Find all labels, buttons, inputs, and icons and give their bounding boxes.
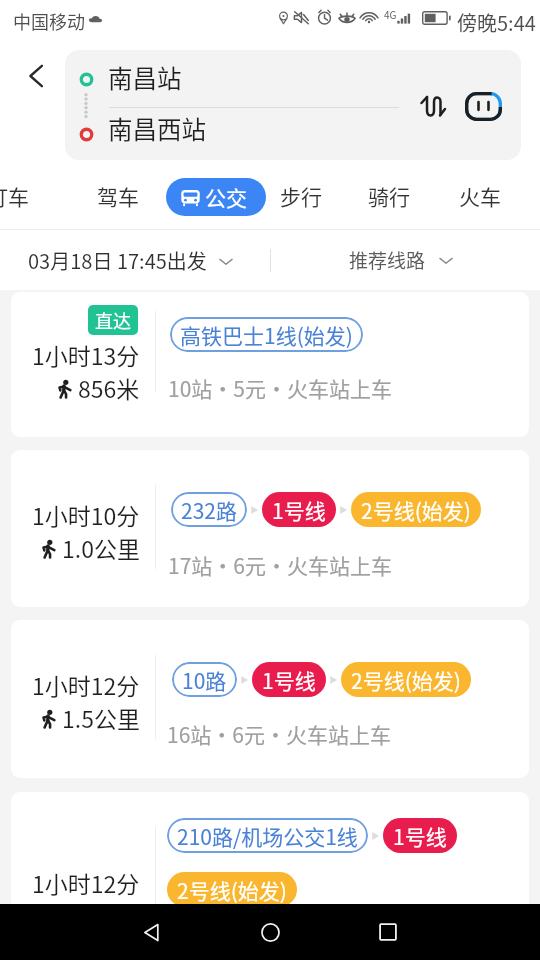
staticText: 1.5公里 [62, 701, 140, 734]
button[interactable]: Recent apps [373, 917, 403, 947]
staticText: 骑行 [368, 181, 410, 211]
button[interactable]: 步行 [280, 181, 322, 211]
staticText: 1小时12分 [32, 668, 140, 701]
button[interactable]: 1小时12分 [11, 792, 529, 950]
staticText: 1号线 [262, 665, 316, 695]
button[interactable]: 骑行 [368, 181, 410, 211]
staticText: 856米 [78, 371, 140, 404]
staticText: 傍晚5:44 [457, 8, 536, 37]
staticText: 1小时13分 [32, 338, 140, 371]
staticText: 高铁巴士1线(始发) [180, 320, 353, 350]
staticText: 2号线(始发) [177, 875, 287, 905]
staticText: 直达 [95, 307, 131, 333]
button[interactable]: 火车 [459, 181, 501, 211]
staticText: 中国移动 [13, 8, 85, 34]
staticText: 打车 [0, 181, 29, 211]
staticText: 232路 [181, 495, 237, 525]
button[interactable]: 直达 [11, 292, 529, 437]
staticText: 驾车 [97, 181, 139, 211]
staticText: 2号线(始发) [361, 495, 471, 525]
staticText: 南昌西站 [108, 111, 206, 146]
staticText: 推荐线路 [349, 246, 426, 274]
staticText: 10路 [182, 665, 227, 695]
staticText: 17站·6元·火车站上车 [168, 550, 392, 580]
button[interactable]: Back [16, 56, 56, 96]
button[interactable]: 1小时10分 [11, 450, 529, 607]
button[interactable]: 驾车 [97, 181, 139, 211]
staticText: 03月18日 17:45出发 [28, 246, 207, 275]
staticText: 公交 [205, 182, 247, 212]
staticText: 10站·5元·火车站上车 [168, 373, 392, 403]
staticText: 步行 [280, 181, 322, 211]
staticText: 16站·6元·火车站上车 [167, 719, 391, 749]
button[interactable]: 公交 [166, 178, 266, 216]
staticText: 南昌站 [108, 60, 182, 95]
staticText: 210路/机场公交1线 [177, 821, 358, 851]
button[interactable]: 1小时12分 [11, 620, 529, 778]
button[interactable]: Home [255, 917, 285, 947]
button[interactable]: Transit card [461, 84, 505, 128]
button[interactable]: 打车 [0, 181, 29, 211]
staticText: 1号线 [393, 821, 447, 851]
button[interactable]: 推荐线路 [339, 240, 464, 280]
staticText: 1小时12分 [32, 866, 140, 899]
staticText: 1.0公里 [62, 531, 140, 564]
staticText: 1小时10分 [32, 498, 140, 531]
staticText: 火车 [459, 181, 501, 211]
staticText: 1号线 [272, 495, 326, 525]
button[interactable]: 03月18日 17:45出发 [18, 240, 244, 281]
button[interactable]: Swap origin and destination [410, 84, 454, 128]
staticText: 2号线(始发) [351, 665, 461, 695]
button[interactable]: Back [137, 917, 167, 947]
staticText: 4G [384, 7, 397, 21]
